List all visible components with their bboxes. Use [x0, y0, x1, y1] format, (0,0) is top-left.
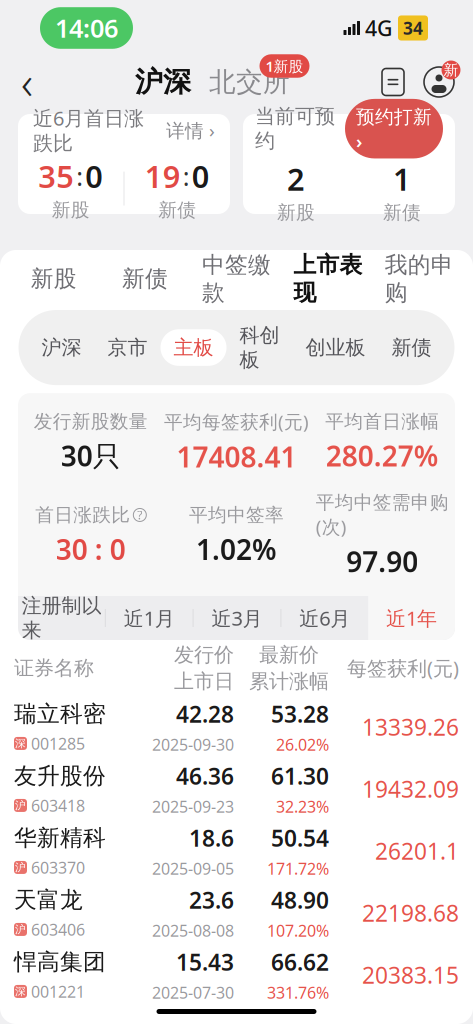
staticText: 每签获利(元): [347, 655, 459, 681]
staticText: :: [76, 159, 83, 193]
staticText: 603418: [31, 795, 85, 816]
button[interactable]: 我的申购: [374, 262, 465, 304]
staticText: 1新股: [265, 56, 303, 76]
staticText: 沪深: [41, 335, 81, 360]
button[interactable]: 新股: [8, 262, 99, 304]
button[interactable]: Records: [371, 60, 415, 104]
staticText: 20383.15: [362, 960, 459, 990]
staticText: 上市表现: [293, 251, 362, 307]
staticText: 32.23%: [276, 796, 329, 817]
staticText: 新债: [122, 265, 168, 293]
staticText: 北交所: [209, 66, 290, 98]
staticText: 26201.1: [375, 836, 459, 866]
staticText: 2025-07-30: [152, 982, 234, 1003]
staticText: 19: [145, 156, 181, 196]
staticText: 171.72%: [267, 858, 329, 879]
button[interactable]: 预约打新 ›: [345, 99, 443, 158]
button[interactable]: 新债: [378, 329, 444, 366]
staticText: 预约打新 ›: [356, 104, 432, 153]
button[interactable]: 近6月: [281, 596, 368, 640]
staticText: 001285: [31, 733, 85, 754]
staticText: 15.43: [176, 947, 234, 977]
button[interactable]: 上市表现: [282, 262, 374, 304]
staticText: 新股: [52, 198, 90, 221]
staticText: 上市日: [174, 669, 234, 694]
button[interactable]: 京市: [94, 329, 160, 366]
staticText: 悍高集团: [14, 948, 106, 976]
staticText: 603370: [31, 857, 85, 878]
staticText: 603406: [31, 919, 85, 940]
staticText: 发行价: [174, 642, 234, 667]
button[interactable]: 悍高集团: [0, 944, 473, 1006]
staticText: 详情 ›: [166, 118, 215, 143]
staticText: 2: [287, 158, 305, 199]
staticText: 2025-09-30: [152, 734, 234, 755]
staticText: 1.02%: [196, 530, 277, 568]
staticText: 新: [443, 61, 458, 79]
button[interactable]: 新债: [99, 262, 191, 304]
staticText: 18.6: [189, 823, 234, 853]
staticText: 新债: [158, 198, 196, 221]
staticText: 19432.09: [362, 774, 459, 804]
staticText: 42.28: [176, 699, 234, 729]
button[interactable]: 友升股份: [0, 758, 473, 820]
button[interactable]: 沪深: [28, 329, 94, 366]
button[interactable]: 中签缴款: [191, 262, 282, 304]
staticText: 沪深: [135, 65, 191, 99]
staticText: 最新价: [259, 642, 319, 667]
staticText: 53.28: [271, 699, 329, 729]
staticText: 新股: [277, 201, 315, 224]
button[interactable]: 沪深: [135, 65, 191, 99]
button[interactable]: Back: [0, 60, 54, 104]
staticText: 累计涨幅: [249, 669, 329, 694]
staticText: 沪: [15, 861, 26, 874]
button[interactable]: 天富龙: [0, 882, 473, 944]
staticText: 平均中签率: [189, 503, 284, 526]
staticText: 瑞立科密: [14, 700, 106, 728]
staticText: 新债: [383, 201, 421, 224]
staticText: 近3月: [211, 605, 262, 631]
staticText: 华新精科: [14, 824, 106, 852]
button[interactable]: 注册制以来: [18, 596, 105, 640]
button[interactable]: 北交所: [191, 66, 290, 98]
staticText: 近6月首日涨跌比: [33, 105, 144, 156]
button[interactable]: 近3月: [194, 596, 280, 640]
staticText: 近6月: [299, 605, 350, 631]
staticText: 新股: [31, 265, 77, 293]
button[interactable]: 科创板: [226, 317, 292, 378]
staticText: 发行新股数量: [34, 410, 148, 433]
staticText: 深: [15, 985, 26, 998]
staticText: 京市: [107, 335, 147, 360]
button[interactable]: 创业板: [292, 329, 378, 366]
staticText: 首日涨跌比: [35, 503, 130, 526]
staticText: 2025-09-23: [152, 796, 234, 817]
staticText: 35: [38, 156, 74, 196]
staticText: ?: [137, 507, 142, 523]
button[interactable]: 近1月: [106, 596, 193, 640]
staticText: 48.90: [271, 885, 329, 915]
staticText: 证券名称: [14, 656, 94, 680]
staticText: 1: [393, 158, 411, 199]
staticText: 331.76%: [267, 982, 329, 1003]
staticText: 46.36: [176, 761, 234, 791]
staticText: 我的申购: [385, 251, 454, 307]
staticText: 30 : 0: [56, 530, 126, 568]
staticText: 280.27%: [326, 437, 439, 474]
staticText: 深: [15, 737, 26, 750]
button[interactable]: Profile: [415, 58, 463, 106]
staticText: 14:06: [55, 11, 118, 45]
staticText: 2025-08-08: [152, 920, 234, 941]
button[interactable]: 详情 ›: [166, 118, 215, 143]
staticText: 2025-09-05: [152, 858, 234, 879]
button[interactable]: 近1年: [368, 596, 455, 640]
staticText: 平均中签需申购(次): [316, 491, 449, 539]
staticText: 平均每签获利(元): [164, 409, 309, 434]
button[interactable]: 华新精科: [0, 820, 473, 882]
staticText: 天富龙: [14, 886, 83, 914]
button[interactable]: 瑞立科密: [0, 696, 473, 758]
staticText: 97.90: [346, 543, 418, 580]
button[interactable]: 主板: [160, 329, 226, 366]
staticText: ‹: [21, 52, 33, 112]
staticText: 26.02%: [276, 734, 329, 755]
staticText: 0: [192, 156, 210, 196]
